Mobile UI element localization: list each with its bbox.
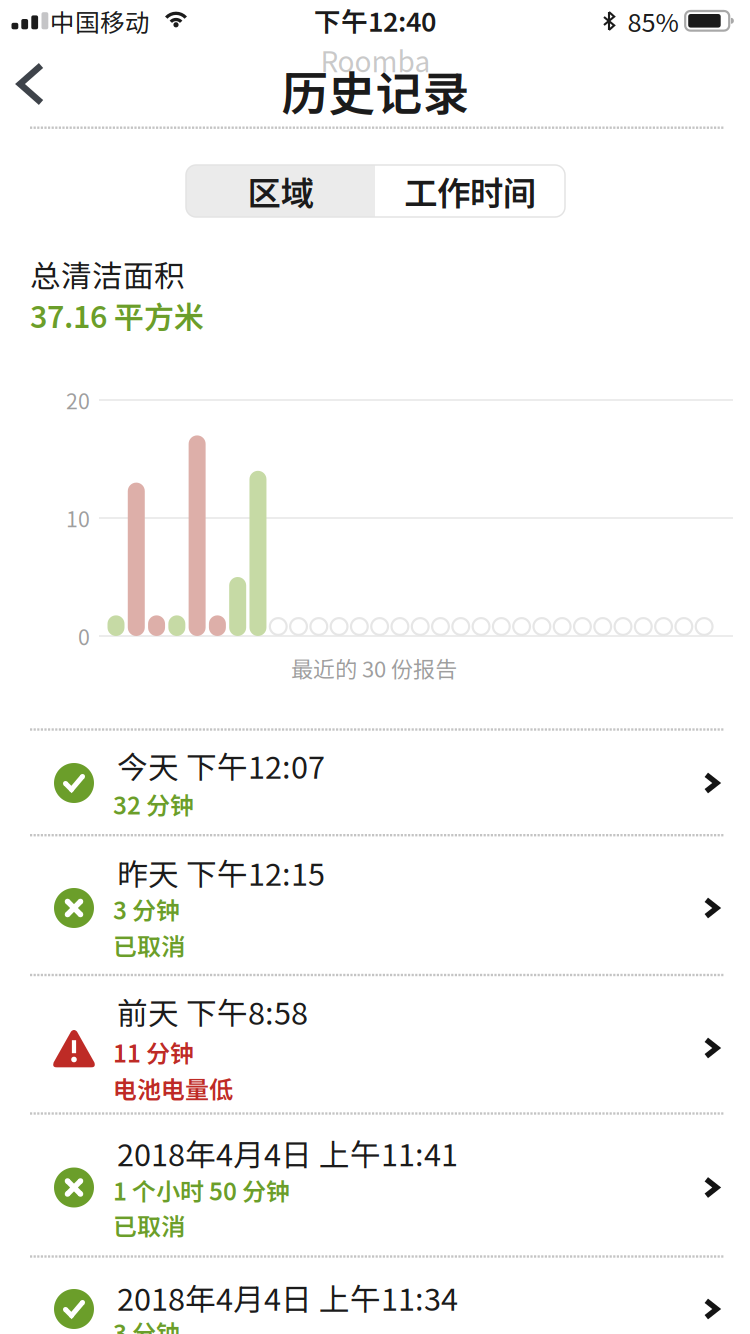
staticText: 前天 下午8:58 [117, 989, 308, 1034]
staticText: 11 分钟 [113, 1035, 194, 1069]
staticText: 昨天 下午12:15 [117, 850, 325, 895]
staticText: 下午12:40 [314, 1, 436, 39]
staticText: 3 分钟 [113, 1315, 180, 1334]
staticText: 1 个小时 50 分钟 [113, 1173, 290, 1207]
staticText: 2018年4月4日 上午11:41 [117, 1131, 458, 1175]
staticText: 已取消 [113, 1208, 185, 1242]
button[interactable] [16, 62, 45, 105]
staticText: Roomba [320, 40, 430, 80]
staticText: 最近的 30 份报告 [291, 652, 457, 684]
button[interactable]: 今天 下午12:07 [0, 729, 750, 834]
staticText: 0 [78, 621, 90, 651]
staticText: 已取消 [113, 928, 185, 962]
button[interactable]: 前天 下午8:58 [0, 975, 750, 1113]
staticText: 工作时间 [404, 167, 536, 215]
button[interactable]: 工作时间 [375, 165, 565, 217]
staticText: 85% [627, 3, 678, 39]
staticText: 2018年4月4日 上午11:34 [117, 1275, 458, 1320]
staticText: 20 [66, 385, 90, 415]
staticText: 10 [66, 503, 90, 533]
staticText: 今天 下午12:07 [117, 743, 325, 788]
staticText: 中国移动 [50, 3, 150, 39]
staticText: 37.16 平方米 [30, 293, 204, 337]
staticText: 3 分钟 [113, 892, 180, 926]
staticText: 电池电量低 [113, 1071, 233, 1105]
staticText: 区域 [247, 167, 313, 215]
staticText: 历史记录 [281, 57, 469, 124]
staticText: 总清洁面积 [30, 252, 185, 296]
button[interactable]: 昨天 下午12:15 [0, 835, 750, 975]
button[interactable]: 2018年4月4日 上午11:41 [0, 1113, 750, 1256]
button[interactable]: 2018年4月4日 上午11:34 [0, 1256, 750, 1334]
button[interactable]: 区域 [186, 165, 375, 217]
staticText: 32 分钟 [113, 787, 194, 821]
